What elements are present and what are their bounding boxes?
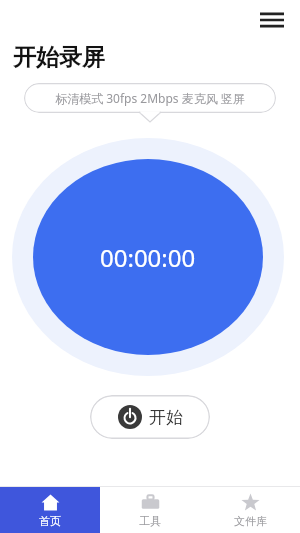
staticText: 开始录屏	[13, 43, 105, 72]
staticText: 00:00:00	[100, 241, 196, 274]
button[interactable]: 首页	[0, 487, 100, 533]
button[interactable]: 开始	[90, 395, 210, 439]
staticText: 工具	[139, 514, 161, 528]
button[interactable]: 工具	[100, 487, 200, 533]
staticText: 文件库	[234, 514, 267, 528]
staticText: 标清模式 30fps 2Mbps 麦克风 竖屏	[55, 90, 245, 106]
button[interactable]: 标清模式 30fps 2Mbps 麦克风 竖屏	[24, 83, 276, 113]
staticText: 开始	[149, 407, 183, 428]
staticText: 首页	[39, 514, 61, 528]
button[interactable]: 文件库	[200, 487, 300, 533]
button[interactable]: Menu	[252, 0, 292, 40]
